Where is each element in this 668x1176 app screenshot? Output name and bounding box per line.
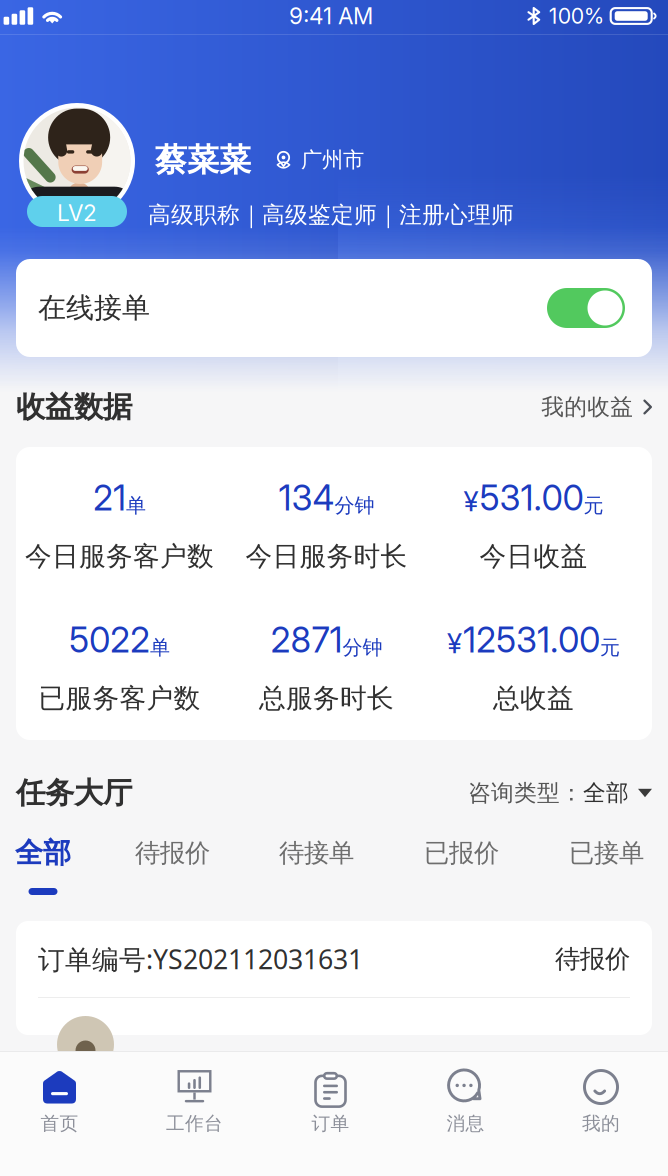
staticText: 订单编号:YS202112031631	[38, 941, 363, 977]
button[interactable]: 首页	[0, 1062, 119, 1142]
staticText: 21	[93, 477, 126, 519]
button[interactable]: 我的收益	[541, 387, 652, 427]
staticText: 已报价	[424, 837, 499, 868]
staticText: 今日服务时长	[245, 540, 407, 573]
staticText: 在线接单	[38, 291, 150, 325]
staticText: 5022	[69, 619, 150, 661]
button[interactable]: 已报价	[424, 836, 499, 895]
staticText: 全部	[583, 779, 629, 807]
staticText: 收益数据	[16, 389, 132, 425]
staticText: 已接单	[569, 837, 644, 868]
staticText: 分钟	[334, 493, 374, 518]
staticText: 高级职称｜高级鉴定师｜注册心理师	[148, 201, 514, 229]
staticText: 全部	[15, 836, 71, 870]
staticText: 100%	[549, 3, 605, 29]
staticText: 2871	[270, 619, 342, 661]
button[interactable]: 全部	[15, 836, 71, 895]
staticText: 总收益	[493, 682, 574, 715]
button[interactable]: 待报价	[135, 836, 210, 895]
staticText: 今日服务客户数	[25, 540, 214, 573]
staticText: 元	[583, 493, 603, 518]
staticText: 任务大厅	[16, 775, 132, 811]
button[interactable]: 已接单	[569, 836, 644, 895]
staticText: 531.00	[479, 477, 583, 519]
button[interactable]: 工作台	[134, 1062, 254, 1142]
staticText: 广州市	[301, 147, 364, 173]
staticText: 单	[150, 635, 170, 660]
staticText: 订单	[311, 1112, 349, 1135]
staticText: 我的收益	[541, 393, 633, 421]
button[interactable]: 在线接单	[16, 259, 652, 357]
staticText: 消息	[446, 1112, 484, 1135]
staticText: 分钟	[342, 635, 382, 660]
staticText: ¥	[447, 626, 462, 660]
staticText: 134	[278, 477, 334, 519]
staticText: 9:41 AM	[289, 2, 373, 30]
button[interactable]: 订单编号:YS202112031631	[16, 921, 652, 1035]
staticText: 今日收益	[479, 540, 587, 573]
button[interactable]: 消息	[405, 1062, 525, 1142]
staticText: 咨询类型：	[468, 779, 583, 807]
staticText: 待接单	[279, 837, 354, 868]
staticText: 已服务客户数	[38, 682, 200, 715]
button[interactable]: 咨询类型：	[468, 773, 652, 813]
staticText: 12531.00	[463, 619, 600, 661]
button[interactable]: 我的	[541, 1062, 661, 1142]
button[interactable]: 待接单	[279, 836, 354, 895]
staticText: 元	[600, 635, 620, 660]
staticText: 我的	[582, 1112, 620, 1135]
staticText: 单	[126, 493, 146, 518]
staticText: 蔡菜菜	[155, 140, 251, 180]
staticText: 待报价	[135, 837, 210, 868]
staticText: 总服务时长	[259, 682, 394, 715]
staticText: 工作台	[166, 1112, 223, 1135]
staticText: 首页	[40, 1112, 78, 1135]
staticText: LV2	[57, 199, 97, 227]
staticText: ¥	[463, 484, 478, 518]
staticText: 待报价	[555, 943, 630, 974]
button[interactable]: 订单	[270, 1062, 390, 1142]
